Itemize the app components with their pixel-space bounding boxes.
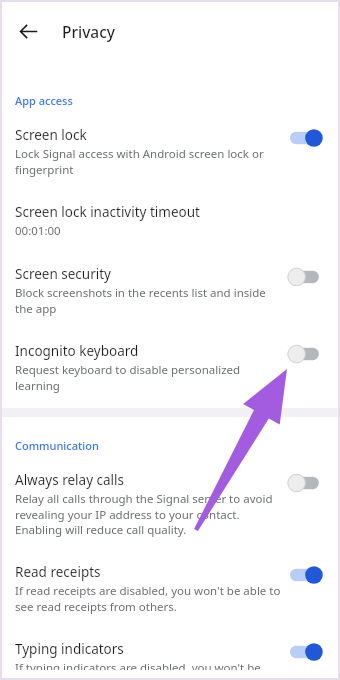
staticText: Block screenshots in the recents list an… [15, 285, 284, 316]
staticText: Typing indicators [15, 640, 124, 658]
staticText: Incognito keyboard [15, 342, 139, 360]
button[interactable]: Screen security [290, 267, 326, 287]
button[interactable]: Incognito keyboard [2, 324, 338, 401]
button[interactable]: Typing indicators [290, 642, 326, 662]
button[interactable]: Always relay calls [2, 453, 338, 545]
staticText: Always relay calls [15, 471, 125, 489]
staticText: Relay all calls through the Signal serve… [15, 491, 284, 537]
staticText: Read receipts [15, 563, 101, 581]
button[interactable]: Read receipts [2, 545, 338, 622]
staticText: Lock Signal access with Android screen l… [15, 146, 284, 177]
staticText: App access [15, 93, 73, 108]
button[interactable]: Typing indicators [2, 622, 338, 678]
button[interactable]: Incognito keyboard [290, 344, 326, 364]
staticText: Communication [15, 438, 99, 453]
staticText: 00:01:00 [15, 223, 61, 239]
button[interactable]: Back [8, 11, 48, 51]
staticText: Request keyboard to disable personalized… [15, 362, 284, 393]
button[interactable]: Screen security [2, 247, 338, 324]
staticText: If read receipts are disabled, you won't… [15, 583, 284, 614]
button[interactable]: Screen lock inactivity timeout [2, 185, 338, 247]
button[interactable]: Screen lock [290, 128, 326, 148]
button[interactable]: Screen lock [2, 108, 338, 185]
staticText: Screen security [15, 265, 111, 283]
button[interactable]: Always relay calls [290, 473, 326, 493]
staticText: Screen lock [15, 126, 87, 144]
staticText: Privacy [62, 21, 116, 42]
staticText: Screen lock inactivity timeout [15, 203, 200, 221]
button[interactable]: Read receipts [290, 565, 326, 585]
staticText: If typing indicators are disabled, you w… [15, 660, 284, 670]
